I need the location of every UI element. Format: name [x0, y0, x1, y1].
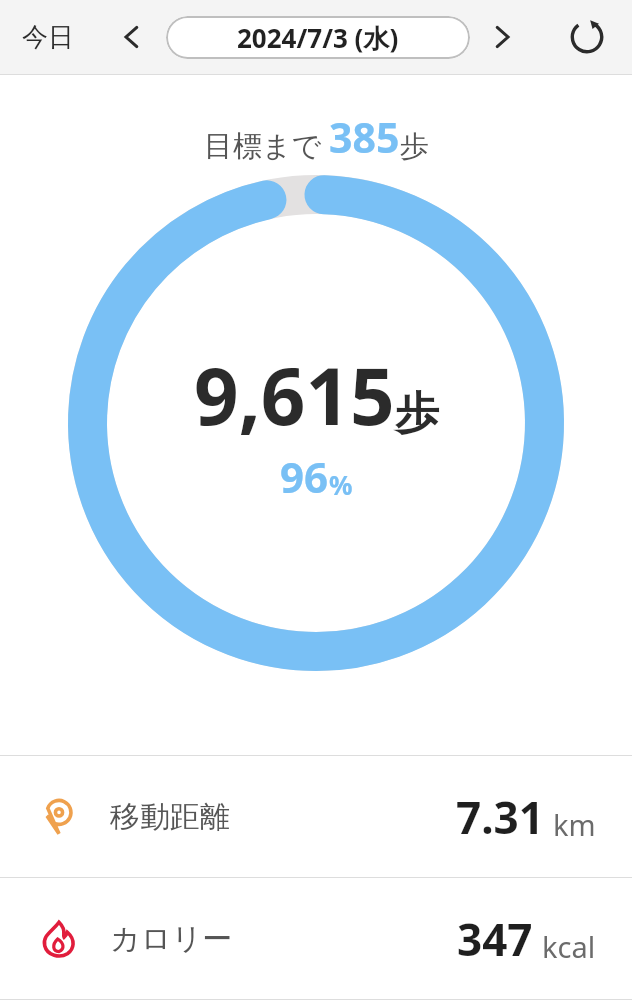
staticText: 7.31 — [456, 787, 544, 847]
staticText: 歩 — [400, 128, 429, 165]
button[interactable]: Refresh — [562, 12, 612, 62]
staticText: kcal — [542, 927, 596, 966]
staticText: km — [553, 805, 596, 844]
staticText: 96 — [280, 448, 329, 505]
button[interactable]: Next day — [478, 13, 526, 61]
staticText: 385 — [329, 109, 400, 165]
staticText: 移動距離 — [110, 798, 230, 836]
staticText: 347 — [457, 909, 533, 969]
button[interactable]: Previous day — [108, 13, 156, 61]
staticText: 歩 — [395, 386, 439, 441]
staticText: カロリー — [110, 920, 233, 958]
button[interactable]: 今日 — [14, 13, 82, 62]
button[interactable]: カロリー — [0, 878, 632, 999]
button[interactable]: 移動距離 — [0, 756, 632, 877]
staticText: 9,615 — [194, 342, 395, 448]
staticText: % — [329, 467, 353, 502]
staticText: 目標まで — [204, 125, 329, 165]
button[interactable]: 2024/7/3 (水) — [166, 16, 470, 59]
staticText: 2024/7/3 (水) — [237, 20, 399, 56]
staticText: 今日 — [22, 21, 74, 54]
